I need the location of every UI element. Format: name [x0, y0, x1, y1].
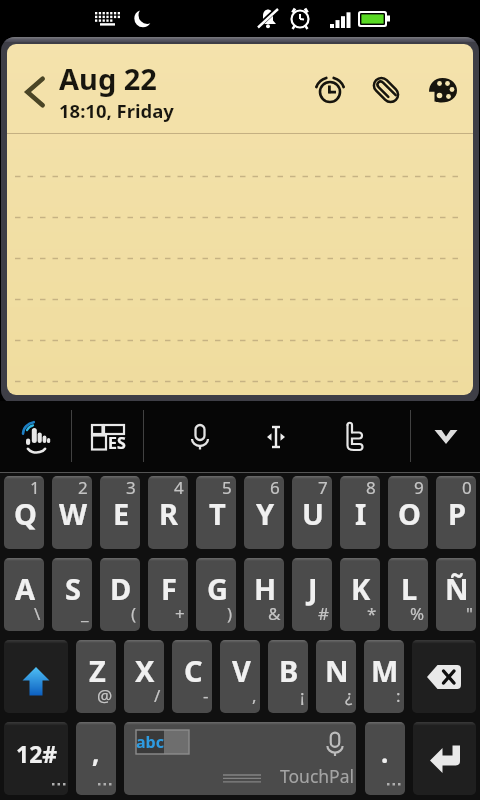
staticText: 0 — [462, 476, 472, 499]
staticText: & — [268, 602, 281, 625]
button[interactable]: 4 — [148, 476, 188, 549]
button[interactable]: K — [340, 558, 380, 631]
staticText: 6 — [270, 476, 280, 499]
staticText: T — [209, 494, 226, 533]
button[interactable]: 3 — [100, 476, 140, 549]
staticText: Q — [14, 494, 37, 533]
button[interactable]: N — [316, 640, 356, 713]
staticText: U — [302, 494, 324, 533]
staticText: + — [175, 602, 185, 625]
staticText: 8 — [366, 476, 376, 499]
button[interactable]: D — [100, 558, 140, 631]
staticText: E — [113, 494, 130, 533]
staticText: 3 — [126, 476, 136, 499]
staticText: A — [15, 569, 36, 608]
staticText: * — [367, 602, 377, 625]
staticText: / — [154, 684, 161, 707]
staticText: 4 — [174, 476, 184, 499]
button[interactable]: 0 — [436, 476, 476, 549]
staticText: % — [410, 602, 425, 625]
staticText: V — [232, 651, 251, 690]
staticText: # — [318, 602, 329, 625]
button[interactable]: . — [365, 722, 405, 795]
button[interactable]: Backspace — [412, 640, 476, 713]
staticText: Y — [256, 494, 275, 533]
button[interactable]: B — [268, 640, 308, 713]
button[interactable]: 1 — [4, 476, 44, 549]
staticText: P — [448, 494, 467, 533]
staticText: 2 — [78, 476, 88, 499]
button[interactable]: V — [220, 640, 260, 713]
button[interactable]: Theme — [420, 67, 466, 113]
staticText: abc — [136, 731, 164, 753]
button[interactable]: Handwriting — [296, 401, 410, 473]
button[interactable]: L — [388, 558, 428, 631]
button[interactable]: Voice input — [144, 401, 256, 473]
button[interactable]: J — [292, 558, 332, 631]
staticText: Z — [89, 651, 106, 690]
staticText: \ — [34, 602, 41, 625]
staticText: B — [279, 651, 299, 690]
staticText: K — [351, 569, 371, 608]
button[interactable]: Enter — [413, 722, 476, 795]
staticText: , — [92, 735, 100, 770]
button[interactable]: 7 — [292, 476, 332, 549]
staticText: G — [207, 569, 228, 608]
button[interactable]: TouchPal keyboard — [0, 401, 71, 473]
staticText: J — [308, 569, 318, 608]
staticText: R — [159, 494, 179, 533]
button[interactable]: Shift — [4, 640, 68, 713]
button[interactable]: 6 — [244, 476, 284, 549]
button[interactable]: C — [172, 640, 212, 713]
staticText: L — [401, 569, 418, 608]
button[interactable]: 2 — [52, 476, 92, 549]
staticText: N — [325, 651, 349, 690]
staticText: ES — [108, 432, 126, 454]
staticText: - — [203, 684, 209, 707]
staticText: C — [184, 651, 203, 690]
staticText: ( — [131, 602, 137, 625]
staticText: " — [466, 602, 473, 625]
staticText: H — [254, 569, 277, 608]
staticText: X — [135, 651, 155, 690]
button[interactable]: 12# — [4, 722, 68, 795]
button[interactable]: Ñ — [436, 558, 476, 631]
button[interactable]: Attachment — [363, 67, 409, 113]
button[interactable]: X — [124, 640, 164, 713]
button[interactable]: Z — [76, 640, 116, 713]
button[interactable]: Space — [124, 722, 356, 795]
staticText: O — [398, 494, 421, 533]
button[interactable]: 8 — [340, 476, 380, 549]
button[interactable]: Move cursor — [256, 401, 296, 473]
staticText: 9 — [414, 476, 424, 499]
button[interactable]: , — [76, 722, 116, 795]
button[interactable]: Hide keyboard — [411, 401, 480, 473]
staticText: . — [381, 735, 389, 770]
staticText: ¡ — [300, 684, 305, 707]
staticText: , — [252, 684, 257, 707]
button[interactable]: F — [148, 558, 188, 631]
staticText: 18:10, Friday — [59, 98, 174, 123]
button[interactable]: M — [364, 640, 404, 713]
button[interactable]: S — [52, 558, 92, 631]
button[interactable]: G — [196, 558, 236, 631]
button[interactable]: Back — [7, 44, 57, 133]
button[interactable]: Language ES — [72, 401, 143, 473]
staticText: S — [65, 569, 81, 608]
staticText: W — [59, 494, 88, 533]
staticText: D — [110, 569, 132, 608]
staticText: 5 — [222, 476, 232, 499]
staticText: F — [161, 569, 177, 608]
button[interactable]: H — [244, 558, 284, 631]
staticText: 12# — [16, 738, 58, 769]
staticText: Aug 22 — [59, 59, 157, 98]
staticText: M — [371, 651, 399, 690]
staticText: : — [396, 684, 401, 707]
staticText: ¿ — [345, 684, 353, 707]
button[interactable]: 9 — [388, 476, 428, 549]
button[interactable]: Reminder — [307, 67, 353, 113]
button[interactable]: 5 — [196, 476, 236, 549]
staticText: _ — [81, 602, 89, 625]
button[interactable]: A — [4, 558, 44, 631]
staticText: TouchPal — [280, 764, 355, 788]
